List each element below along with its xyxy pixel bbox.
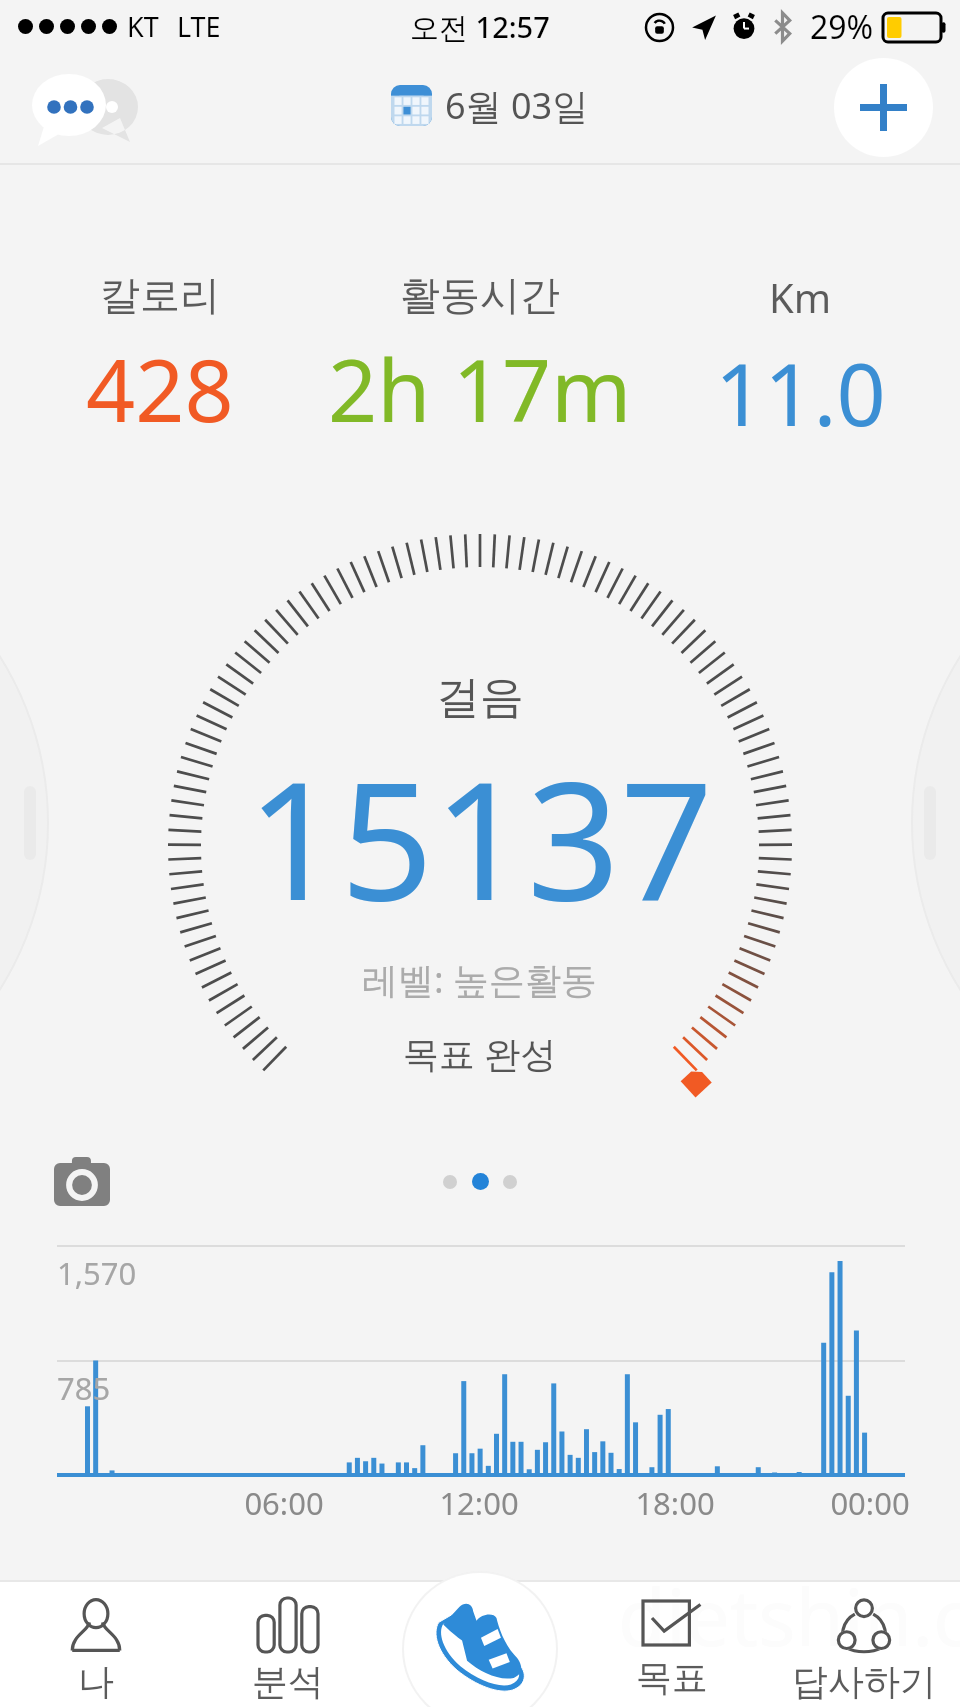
staticText: 1,570: [57, 1252, 137, 1294]
staticText: LTE: [177, 8, 221, 45]
staticText: 785: [57, 1367, 111, 1409]
staticText: 활동시간: [400, 270, 560, 320]
staticText: 답사하기: [792, 1659, 936, 1704]
button[interactable]: Steps: [404, 1573, 556, 1707]
staticText: 00:00: [810, 1482, 930, 1524]
staticText: KT: [127, 8, 159, 45]
staticText: 15137: [247, 726, 714, 948]
staticText: 칼로리: [100, 270, 220, 320]
staticText: dietshin.com: [618, 1563, 960, 1669]
button[interactable]: 분석: [192, 1598, 384, 1704]
staticText: 오전 12:57: [410, 7, 550, 47]
staticText: 나: [78, 1659, 114, 1704]
button[interactable]: Km: [640, 270, 960, 451]
staticText: 걸음: [436, 670, 524, 725]
button[interactable]: 목표: [576, 1598, 768, 1700]
staticText: 29%: [810, 5, 874, 49]
staticText: 18:00: [615, 1482, 735, 1524]
staticText: 목표: [636, 1655, 708, 1700]
button[interactable]: 활동시간: [320, 270, 640, 447]
staticText: Km: [769, 270, 832, 324]
button[interactable]: Messages: [24, 68, 148, 148]
staticText: 428: [86, 330, 234, 447]
button[interactable]: Add: [834, 58, 933, 157]
staticText: 11.0: [715, 334, 886, 451]
button[interactable]: Camera: [54, 1156, 110, 1206]
staticText: 2h 17m: [328, 330, 632, 447]
staticText: 12:00: [419, 1482, 539, 1524]
button[interactable]: 칼로리: [0, 270, 320, 447]
staticText: 목표 완성: [403, 1029, 557, 1078]
staticText: 레벨: 높은활동: [362, 955, 598, 1004]
button[interactable]: 나: [0, 1598, 192, 1704]
staticText: 분석: [252, 1659, 324, 1704]
staticText: 6월 03일: [445, 81, 589, 130]
staticText: 06:00: [224, 1482, 344, 1524]
button[interactable]: 답사하기: [768, 1598, 960, 1704]
button[interactable]: 6월 03일: [391, 81, 589, 130]
